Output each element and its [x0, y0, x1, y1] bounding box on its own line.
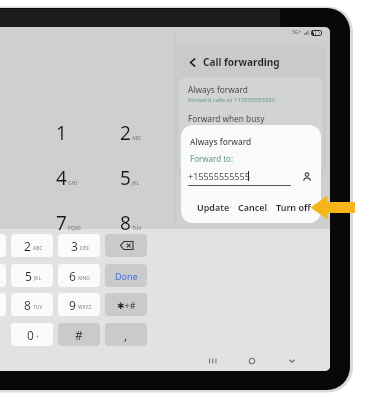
staticText: Forward to:	[190, 153, 234, 164]
button[interactable]: 7	[0, 293, 6, 316]
staticText: 3	[71, 238, 78, 254]
staticText: TUV	[33, 304, 43, 311]
staticText: JKL	[132, 180, 140, 187]
button[interactable]: 1	[0, 234, 6, 257]
button[interactable]: ✱+#	[105, 293, 147, 316]
staticText: MNO	[78, 275, 91, 282]
staticText: ABC	[132, 135, 142, 142]
staticText: Always forward	[188, 84, 248, 95]
staticText: Always forward	[190, 136, 252, 147]
button[interactable]: 3	[58, 234, 100, 257]
staticText: Call forwarding	[203, 55, 280, 69]
staticText: #	[75, 327, 83, 343]
staticText: WXYZ	[78, 304, 92, 311]
staticText: ,	[124, 327, 128, 343]
staticText: ✱+#	[117, 299, 136, 311]
staticText: 8	[120, 210, 131, 236]
button[interactable]: 0	[11, 323, 53, 346]
button[interactable]: 2	[11, 234, 53, 257]
button[interactable]: 5	[120, 165, 139, 191]
staticText: TUV	[132, 225, 142, 232]
button[interactable]: Forward when busy	[188, 113, 265, 124]
button[interactable]: Recents	[206, 355, 218, 367]
staticText: 8	[24, 297, 31, 313]
staticText: Turn off	[276, 201, 311, 213]
button[interactable]: 4	[56, 165, 77, 191]
other: Backspace	[120, 241, 133, 250]
staticText: 100	[313, 30, 321, 36]
button[interactable]: 1	[56, 120, 67, 146]
staticText: DEF	[80, 245, 90, 252]
other: Back	[188, 58, 197, 67]
button[interactable]: #	[58, 323, 100, 346]
staticText: GHI	[68, 180, 78, 187]
staticText: Update	[197, 201, 230, 213]
button[interactable]: 5	[11, 264, 53, 287]
staticText: +	[36, 334, 39, 341]
button[interactable]: Update	[193, 198, 234, 216]
button[interactable]: 2	[120, 120, 141, 146]
button[interactable]: 9	[58, 293, 100, 316]
staticText: 5	[25, 268, 32, 284]
button[interactable]: ,	[105, 323, 147, 346]
button[interactable]: Turn off	[272, 198, 315, 216]
staticText: +15555555555	[188, 170, 250, 182]
button[interactable]: 8	[11, 293, 53, 316]
staticText: Cancel	[238, 201, 268, 213]
staticText: 5G+	[292, 29, 302, 36]
button[interactable]: Back	[186, 53, 282, 71]
button[interactable]: Choose contact	[302, 172, 312, 182]
staticText: 2	[120, 120, 131, 146]
button[interactable]: Home	[246, 355, 258, 367]
button[interactable]: 4	[0, 264, 6, 287]
button[interactable]: 7	[56, 210, 80, 236]
button[interactable]: Always forward	[188, 84, 276, 104]
button[interactable]: Done	[105, 264, 147, 287]
staticText: 6	[69, 268, 76, 284]
staticText: 2	[24, 238, 31, 254]
staticText: Done	[115, 270, 138, 282]
button[interactable]: Cancel	[234, 198, 272, 216]
button[interactable]: Backspace	[105, 234, 147, 257]
button[interactable]: 8	[120, 210, 141, 236]
staticText: 5	[120, 165, 131, 191]
staticText: JKL	[34, 275, 42, 282]
staticText: 7	[56, 210, 67, 236]
staticText: ABC	[33, 245, 43, 252]
staticText: PQRS	[68, 225, 81, 232]
staticText: 1	[56, 120, 67, 146]
staticText: 9	[69, 297, 76, 313]
staticText: Forward when busy	[188, 113, 265, 124]
button[interactable]: 6	[58, 264, 100, 287]
staticText: 0	[27, 327, 34, 343]
staticText: 4	[56, 165, 67, 191]
button[interactable]: Back	[286, 355, 298, 367]
staticText: Forward calls to +15555555555	[188, 96, 276, 104]
